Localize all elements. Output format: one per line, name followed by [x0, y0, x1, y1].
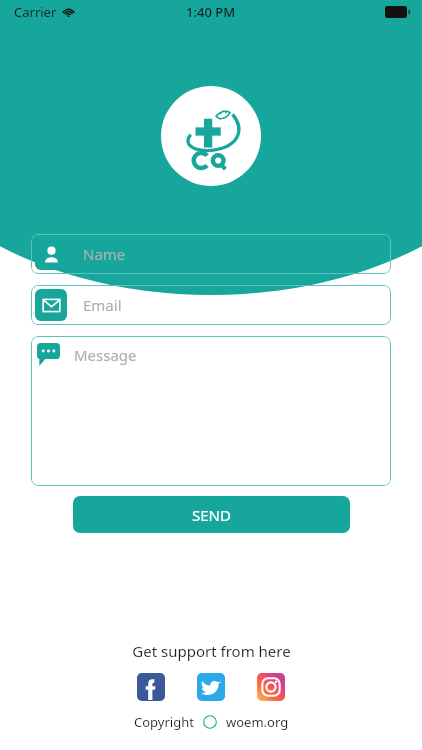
- button[interactable]: Copyright: [134, 713, 289, 731]
- button[interactable]: Instagram: [257, 673, 285, 701]
- button[interactable]: Facebook: [137, 673, 165, 701]
- staticText: Copyright: [134, 713, 194, 731]
- staticText: woem.org: [226, 713, 289, 731]
- button[interactable]: Message: [31, 336, 391, 486]
- staticText: Message: [74, 345, 137, 365]
- staticText: SEND: [192, 505, 231, 525]
- staticText: 1:40 PM: [186, 3, 236, 21]
- button[interactable]: Name: [31, 234, 391, 274]
- button[interactable]: Email: [31, 285, 391, 325]
- button[interactable]: Twitter: [197, 673, 225, 701]
- staticText: Email: [83, 295, 122, 315]
- staticText: Get support from here: [132, 641, 291, 661]
- staticText: Carrier: [14, 3, 57, 21]
- staticText: Name: [83, 244, 126, 264]
- button[interactable]: SEND: [73, 496, 350, 533]
